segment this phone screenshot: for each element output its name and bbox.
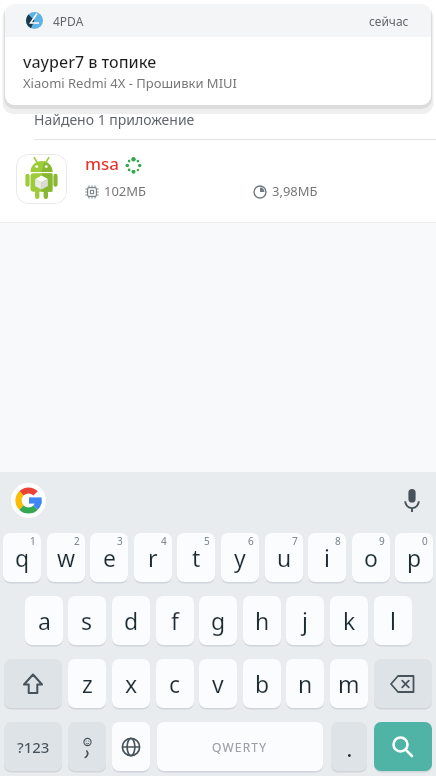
staticText: i <box>324 542 330 573</box>
button[interactable]: b <box>243 659 281 708</box>
button[interactable]: x <box>112 659 150 708</box>
staticText: 102МБ <box>104 182 147 200</box>
staticText: 3 <box>117 534 123 548</box>
button[interactable]: t <box>177 533 215 582</box>
button[interactable] <box>374 722 432 771</box>
staticText: 7 <box>292 534 298 548</box>
staticText: k <box>343 605 356 636</box>
button[interactable]: z <box>68 659 106 708</box>
staticText: m <box>338 668 360 699</box>
staticText: p <box>407 542 422 573</box>
staticText: w <box>57 542 76 573</box>
staticText: v <box>212 668 224 699</box>
staticText: s <box>81 605 93 636</box>
button[interactable]: msa <box>0 144 436 216</box>
button[interactable]: d <box>112 596 150 645</box>
button[interactable]: p <box>395 533 433 582</box>
staticText: сейчас <box>369 13 409 29</box>
staticText: x <box>125 668 138 699</box>
button[interactable]: r <box>134 533 172 582</box>
button[interactable]: a <box>25 596 63 645</box>
button[interactable]: e <box>90 533 128 582</box>
staticText: 5 <box>204 534 210 548</box>
staticText: d <box>124 605 139 636</box>
button[interactable]: h <box>243 596 281 645</box>
button[interactable]: . <box>331 722 367 771</box>
staticText: 8 <box>335 534 341 548</box>
button[interactable]: c <box>156 659 194 708</box>
button[interactable]: m <box>330 659 368 708</box>
staticText: vayper7 в топике <box>23 51 157 73</box>
button[interactable]: i <box>308 533 346 582</box>
staticText: h <box>255 605 270 636</box>
button[interactable] <box>4 659 62 708</box>
staticText: QWERTY <box>212 739 268 755</box>
button[interactable]: ?123 <box>4 722 62 771</box>
button[interactable] <box>68 722 106 771</box>
staticText: z <box>82 668 93 699</box>
staticText: y <box>234 542 246 573</box>
button[interactable]: 4PDA <box>5 4 431 105</box>
button[interactable]: w <box>47 533 85 582</box>
button[interactable]: s <box>68 596 106 645</box>
button[interactable]: n <box>286 659 324 708</box>
staticText: u <box>277 542 292 573</box>
staticText: 4PDA <box>53 13 84 29</box>
staticText: . <box>347 739 352 762</box>
staticText: 9 <box>379 534 385 548</box>
staticText: q <box>15 542 30 573</box>
button[interactable]: u <box>265 533 303 582</box>
staticText: g <box>211 605 226 636</box>
staticText: e <box>103 542 116 573</box>
button[interactable]: y <box>221 533 259 582</box>
button[interactable]: QWERTY <box>157 722 323 771</box>
button[interactable]: l <box>374 596 412 645</box>
staticText: Xiaomi Redmi 4X - Прошивки MIUI <box>23 74 237 92</box>
button[interactable]: q <box>3 533 41 582</box>
staticText: t <box>192 542 201 573</box>
staticText: n <box>298 668 313 699</box>
staticText: 2 <box>74 534 80 548</box>
staticText: r <box>148 542 158 573</box>
staticText: Найдено 1 приложение <box>34 110 195 129</box>
staticText: 6 <box>248 534 254 548</box>
staticText: 4 <box>161 534 167 548</box>
staticText: b <box>255 668 270 699</box>
staticText: o <box>364 542 378 573</box>
button[interactable] <box>374 659 432 708</box>
button[interactable]: f <box>156 596 194 645</box>
button[interactable]: j <box>286 596 324 645</box>
button[interactable]: o <box>352 533 390 582</box>
staticText: l <box>390 605 396 636</box>
staticText: a <box>38 605 51 636</box>
staticText: f <box>171 605 179 636</box>
button[interactable] <box>399 487 425 513</box>
button[interactable]: k <box>330 596 368 645</box>
button[interactable]: g <box>199 596 237 645</box>
staticText: ?123 <box>17 737 50 757</box>
staticText: msa <box>85 152 120 175</box>
staticText: 3,98МБ <box>272 182 318 200</box>
staticText: 0 <box>422 534 428 548</box>
button[interactable] <box>112 722 150 771</box>
staticText: 1 <box>30 534 36 548</box>
staticText: c <box>169 668 181 699</box>
staticText: j <box>302 605 308 636</box>
button[interactable]: v <box>199 659 237 708</box>
button[interactable] <box>11 483 46 518</box>
